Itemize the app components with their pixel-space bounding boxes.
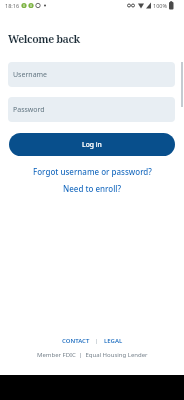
staticText: Username: [13, 70, 48, 80]
staticText: |: [95, 337, 99, 345]
staticText: Password: [13, 105, 45, 115]
button[interactable]: Need to enroll?: [0, 182, 184, 194]
staticText: 100%: [153, 2, 168, 9]
button[interactable]: LEGAL: [104, 337, 123, 345]
staticText: CONTACT: [62, 337, 90, 345]
staticText: Need to enroll?: [63, 183, 122, 194]
staticText: LEGAL: [104, 337, 123, 345]
staticText: Member FDIC | Equal Housing Lender: [37, 351, 148, 359]
staticText: Welcome back: [8, 32, 80, 46]
button[interactable]: Password: [8, 97, 175, 122]
button[interactable]: Username: [8, 62, 175, 87]
button[interactable]: Log in: [9, 133, 175, 156]
button[interactable]: CONTACT: [62, 337, 90, 345]
staticText: 18:16: [5, 2, 20, 9]
button[interactable]: Forgot username or password?: [0, 165, 184, 177]
staticText: Forgot username or password?: [33, 166, 152, 177]
staticText: Log in: [82, 140, 102, 149]
